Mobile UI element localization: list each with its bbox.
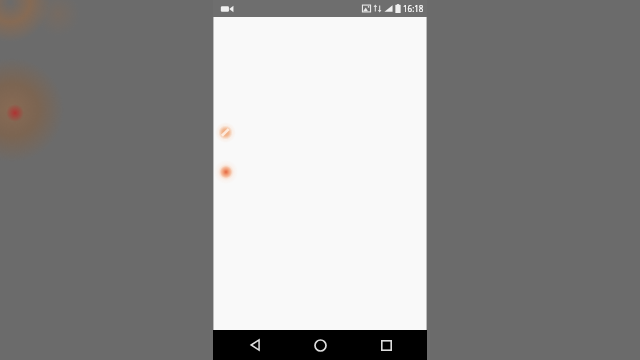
button[interactable]: Add — [214, 160, 238, 184]
button[interactable]: Back — [231, 330, 279, 360]
staticText: 16:18 — [403, 3, 424, 14]
other: Screen recording — [220, 2, 234, 16]
button[interactable]: Home — [296, 330, 344, 360]
button[interactable]: Recent apps — [362, 330, 410, 360]
button[interactable]: Edit — [215, 122, 236, 143]
